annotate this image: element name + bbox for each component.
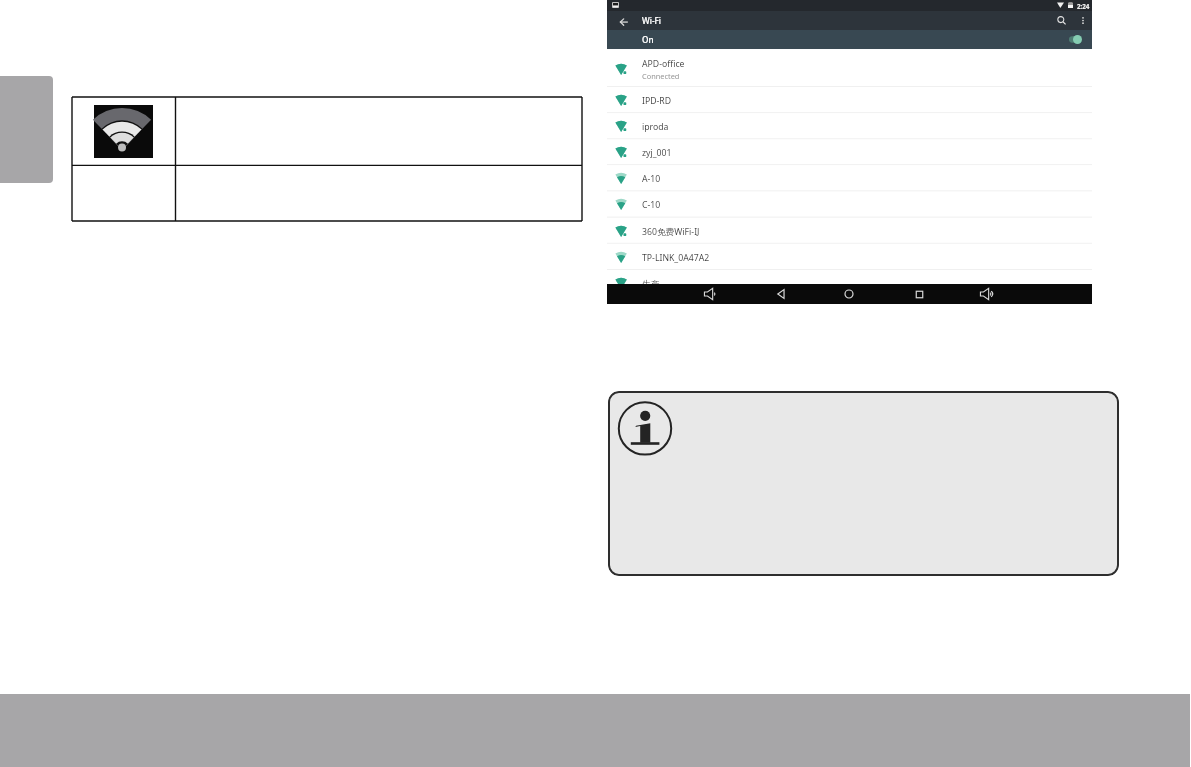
button[interactable]: zyj_001 [607, 139, 1092, 165]
button[interactable]: APD-office [607, 50, 1092, 87]
button[interactable]: iproda [607, 113, 1092, 139]
staticText: 生产 [642, 279, 660, 290]
button[interactable]: More options [1073, 11, 1091, 30]
staticText: C-10 [642, 199, 661, 211]
staticText: A-10 [642, 173, 661, 185]
staticText: On [642, 34, 654, 45]
staticText: TP-LINK_0A47A2 [642, 252, 710, 264]
staticText: 360免费WiFi-IJ [642, 226, 700, 238]
staticText: 2:24 [1077, 2, 1090, 10]
button[interactable]: IPD-RD [607, 87, 1092, 113]
staticText: Wi-Fi [642, 15, 662, 26]
staticText: iproda [642, 121, 669, 133]
button[interactable]: Home [838, 284, 860, 304]
button[interactable]: Volume up [975, 284, 997, 304]
button[interactable]: 360免费WiFi-IJ [607, 218, 1092, 244]
staticText: APD-office [642, 58, 685, 70]
button[interactable]: Volume down [699, 284, 721, 304]
button[interactable]: Back [770, 284, 792, 304]
button[interactable]: TP-LINK_0A47A2 [607, 244, 1092, 270]
button[interactable]: Search [1051, 11, 1072, 30]
button[interactable]: A-10 [607, 165, 1092, 191]
button[interactable]: C-10 [607, 191, 1092, 217]
staticText: IPD-RD [642, 95, 672, 107]
button[interactable]: Navigate up [610, 11, 637, 30]
staticText: Connected [642, 71, 680, 81]
button[interactable]: On [607, 30, 1092, 49]
staticText: zyj_001 [642, 147, 672, 159]
button[interactable]: 生产 [607, 270, 1092, 296]
button[interactable]: Recent apps [908, 284, 930, 304]
